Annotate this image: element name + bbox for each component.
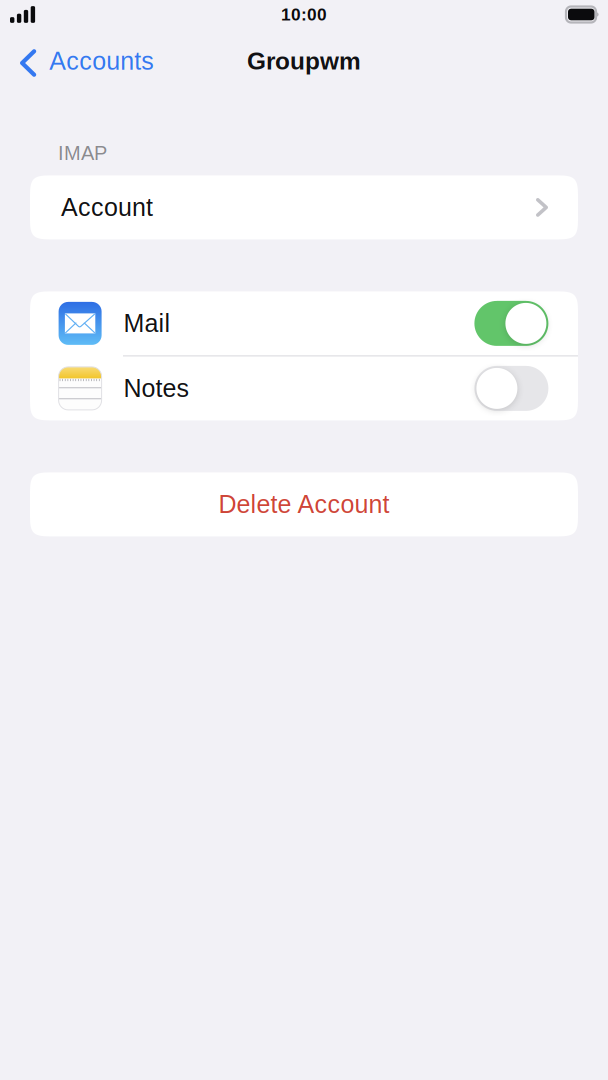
staticText: Mail <box>124 309 171 337</box>
staticText: Groupwm <box>247 47 361 75</box>
staticText: Accounts <box>49 47 154 75</box>
button[interactable]: Delete Account <box>30 472 578 536</box>
staticText: Delete Account <box>218 490 389 518</box>
button[interactable]: Mail, on <box>474 301 548 346</box>
staticText: IMAP <box>58 142 107 164</box>
button[interactable]: Notes <box>30 356 578 420</box>
staticText: 10:00 <box>281 5 327 24</box>
button[interactable]: Notes, off <box>474 366 548 411</box>
button[interactable]: Mail <box>30 291 578 355</box>
button[interactable]: Account <box>30 175 578 239</box>
button[interactable]: Accounts <box>12 31 168 88</box>
staticText: Notes <box>124 374 190 402</box>
staticText: Account <box>61 193 153 221</box>
